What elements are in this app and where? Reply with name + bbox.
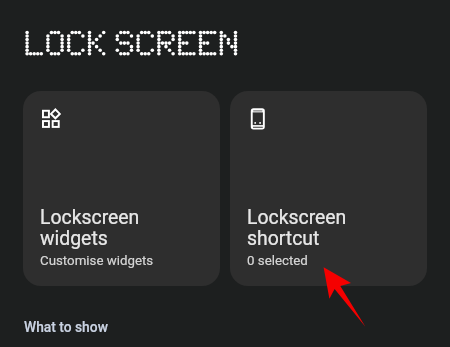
staticText: widgets xyxy=(40,227,108,250)
staticText: What to show xyxy=(24,319,108,335)
staticText: shortcut xyxy=(247,227,320,250)
staticText: Lockscreen xyxy=(40,206,140,229)
staticText: Customise widgets xyxy=(40,253,154,269)
other: Lockscreen shortcut xyxy=(249,108,271,130)
staticText: Lockscreen xyxy=(247,206,347,229)
button[interactable]: What to show xyxy=(24,319,108,335)
other: Lockscreen widgets xyxy=(42,109,64,131)
staticText: 0 selected xyxy=(247,253,308,269)
button[interactable]: Lockscreen widgets xyxy=(23,91,220,286)
button[interactable]: Lockscreen shortcut xyxy=(230,91,427,286)
